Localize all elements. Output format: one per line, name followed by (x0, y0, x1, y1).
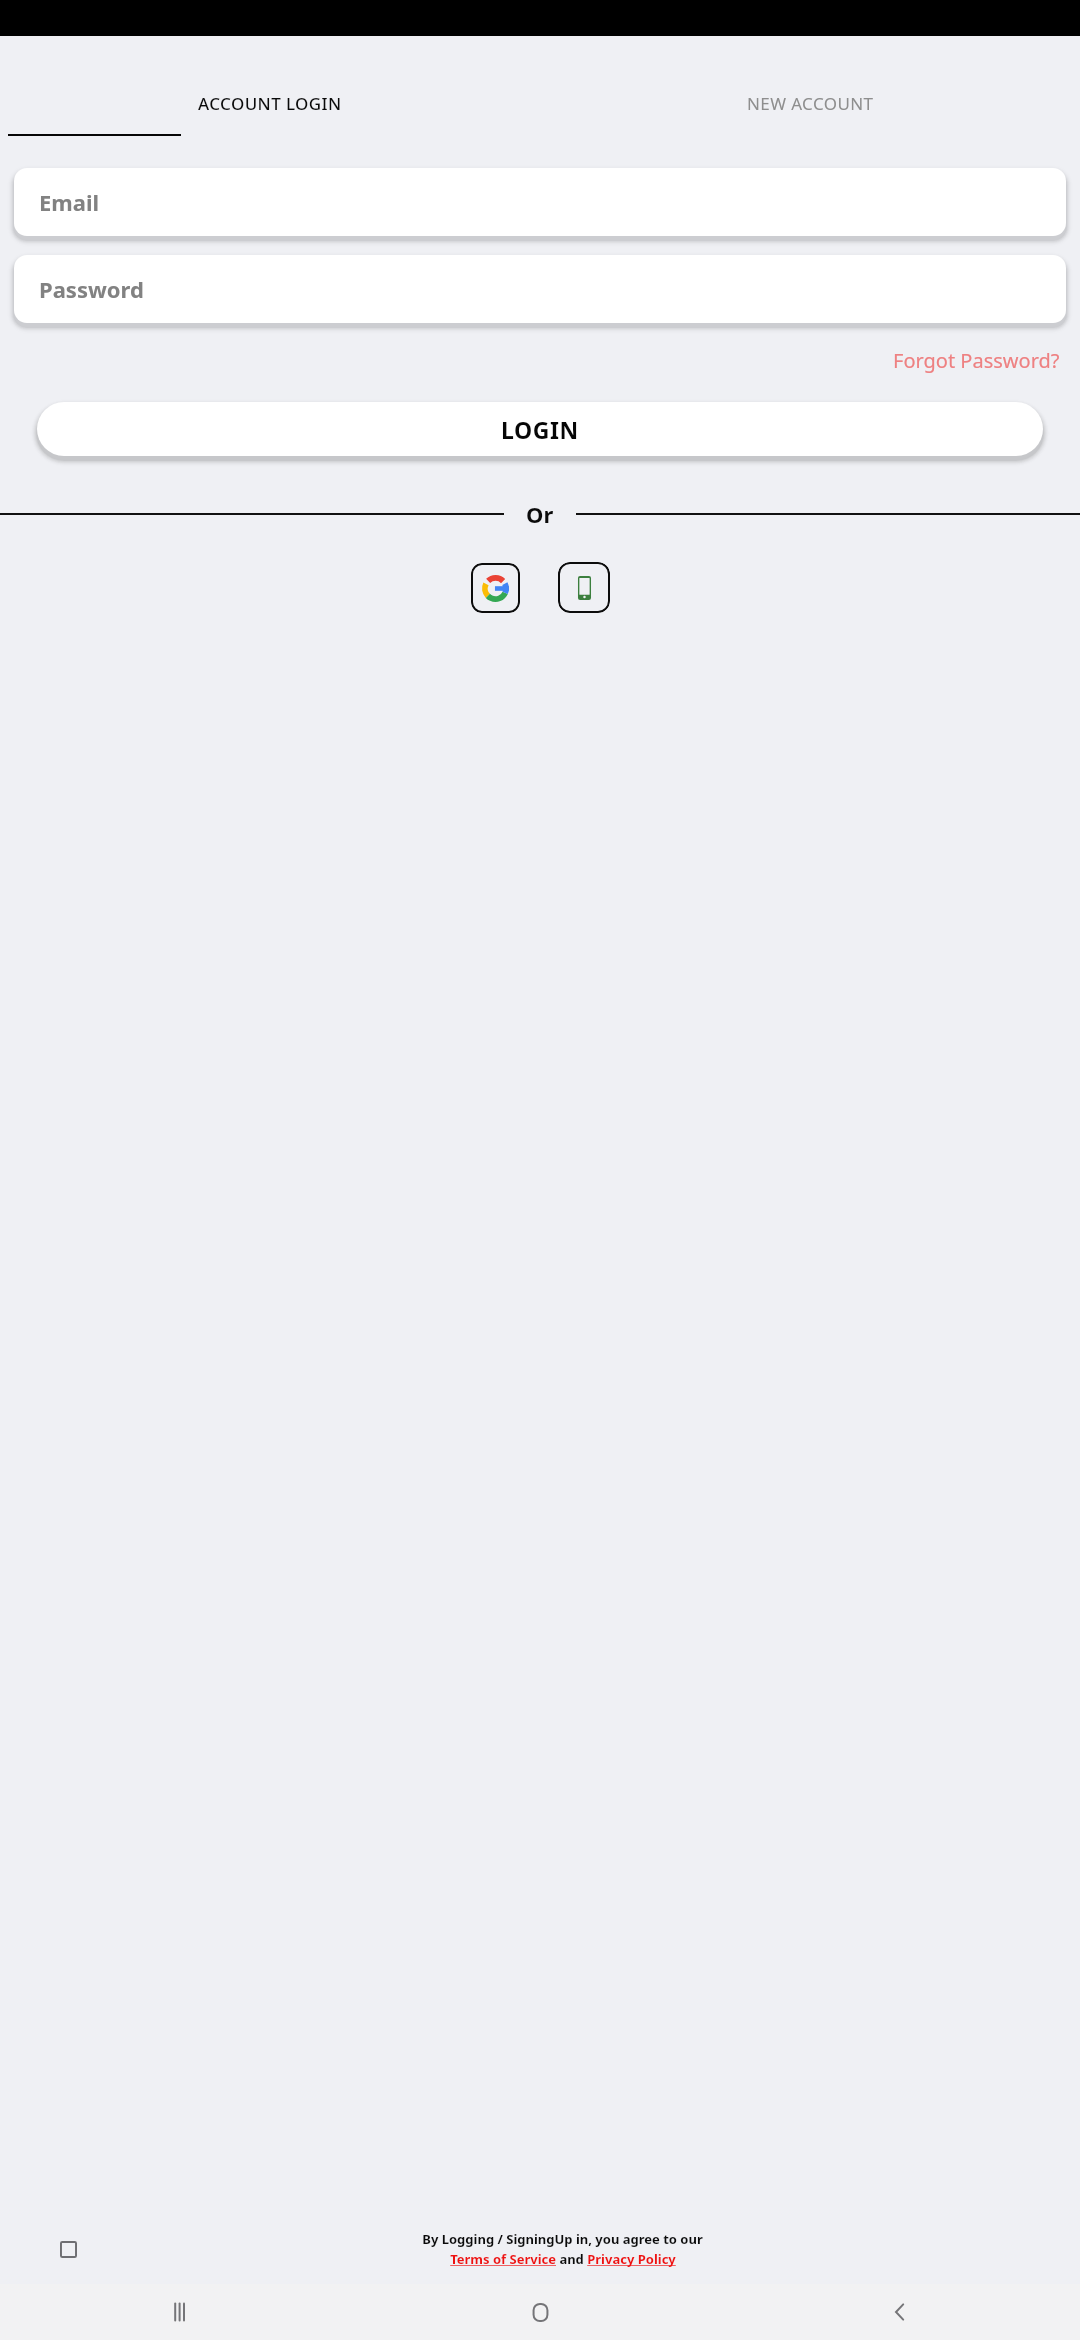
button[interactable]: Agree to terms checkbox (60, 2241, 77, 2258)
button[interactable]: NEW ACCOUNT (540, 92, 1080, 115)
staticText: LOGIN (501, 414, 579, 445)
button[interactable]: Home (360, 2284, 720, 2340)
staticText: By Logging / SigningUp in, you agree to … (422, 2230, 703, 2248)
staticText: Terms of Service and Privacy Policy (450, 2250, 676, 2268)
staticText: Password (39, 274, 144, 304)
staticText: Email (39, 187, 100, 217)
button[interactable]: ACCOUNT LOGIN (0, 92, 540, 115)
staticText: NEW ACCOUNT (747, 92, 874, 115)
button[interactable]: Sign in with phone number (558, 562, 610, 613)
button[interactable]: Forgot Password? (873, 341, 1080, 380)
button[interactable]: Recent apps (0, 2284, 360, 2340)
staticText: ACCOUNT LOGIN (198, 92, 342, 115)
staticText: Forgot Password? (893, 347, 1060, 374)
button[interactable]: Sign in with Google (471, 563, 520, 613)
staticText: Or (526, 499, 554, 529)
button[interactable]: Password (14, 255, 1066, 323)
button[interactable]: Email (14, 168, 1066, 236)
button[interactable]: Back (720, 2284, 1080, 2340)
button[interactable]: LOGIN (37, 402, 1043, 456)
